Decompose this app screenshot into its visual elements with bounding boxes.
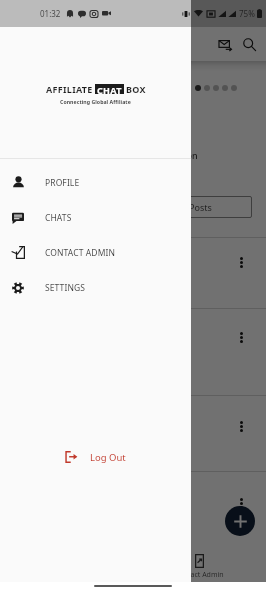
staticText: AFFILIATE — [46, 83, 93, 95]
staticText: Contact Admin — [175, 570, 224, 580]
button[interactable]: More options — [233, 329, 249, 345]
button[interactable]: More options — [233, 254, 249, 270]
button[interactable]: More options — [233, 418, 249, 434]
button[interactable]: SETTINGS — [0, 270, 191, 305]
staticText: 01:32 — [40, 8, 61, 19]
button[interactable]: More options — [233, 495, 249, 511]
button[interactable]: Contact Admin — [166, 552, 232, 580]
staticText: Connecting Global Affiliate — [60, 98, 131, 105]
staticText: Log Out — [90, 451, 126, 464]
button[interactable]: Search — [237, 32, 262, 57]
staticText: 75% — [239, 8, 255, 19]
staticText: PROFILE — [45, 177, 80, 189]
button[interactable]: PROFILE — [0, 165, 191, 200]
staticText: BOX — [126, 83, 146, 95]
button[interactable]: Add — [225, 506, 255, 536]
staticText: CHATS — [45, 212, 72, 224]
staticText: CONTACT ADMIN — [45, 247, 115, 259]
button[interactable]: Messages — [213, 32, 237, 56]
button[interactable]: CONTACT ADMIN — [0, 235, 191, 270]
staticText: SETTINGS — [45, 282, 86, 294]
staticText: CHAT — [97, 84, 122, 94]
button[interactable]: CHATS — [0, 200, 191, 235]
button[interactable]: Posts — [170, 196, 252, 218]
button[interactable]: Log Out — [0, 443, 191, 471]
staticText: Posts — [189, 201, 212, 213]
staticText: Discussion — [152, 149, 198, 161]
